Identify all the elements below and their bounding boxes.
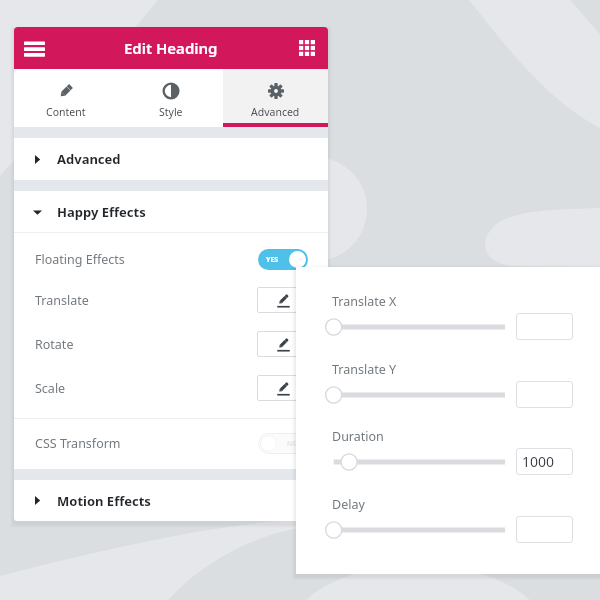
staticText: Scale [35,380,66,397]
button[interactable]: Menu [18,32,50,64]
staticText: Delay [332,496,365,513]
button[interactable]: Scale [14,372,328,404]
staticText: CSS Transform [35,435,121,452]
staticText: YES [266,255,279,265]
staticText: Content [46,105,86,119]
button[interactable]: 1000 [516,448,573,475]
button[interactable]: CSS Transform [14,427,328,459]
button[interactable]: Style [118,69,223,127]
button[interactable]: Translate [14,284,328,316]
button[interactable]: Advanced [14,138,328,180]
button[interactable] [516,381,573,408]
staticText: Style [159,105,183,119]
button[interactable]: Edit Scale [257,375,310,401]
staticText: NO [287,439,299,449]
button[interactable]: Edit Rotate [257,331,310,357]
button[interactable] [516,516,573,543]
staticText: Translate Y [332,361,397,378]
staticText: Rotate [35,336,74,353]
staticText: Floating Effects [35,251,125,268]
staticText: Edit Heading [124,38,218,58]
button[interactable]: Content [14,69,118,127]
staticText: 1000 [522,452,555,471]
button[interactable]: Advanced [223,69,328,127]
staticText: Translate [35,292,89,309]
staticText: Motion Effects [57,492,151,510]
staticText: Advanced [57,150,121,168]
staticText: Translate X [332,293,397,310]
button[interactable]: Apps grid [294,35,320,61]
staticText: Duration [332,428,384,445]
button[interactable]: Happy Effects [14,191,328,233]
staticText: Advanced [251,105,300,119]
button[interactable] [516,313,573,340]
button[interactable]: Edit Translate [257,287,310,313]
button[interactable]: Motion Effects [14,480,328,521]
staticText: Happy Effects [57,203,146,221]
button[interactable]: Floating Effects [14,243,328,275]
button[interactable]: Rotate [14,328,328,360]
